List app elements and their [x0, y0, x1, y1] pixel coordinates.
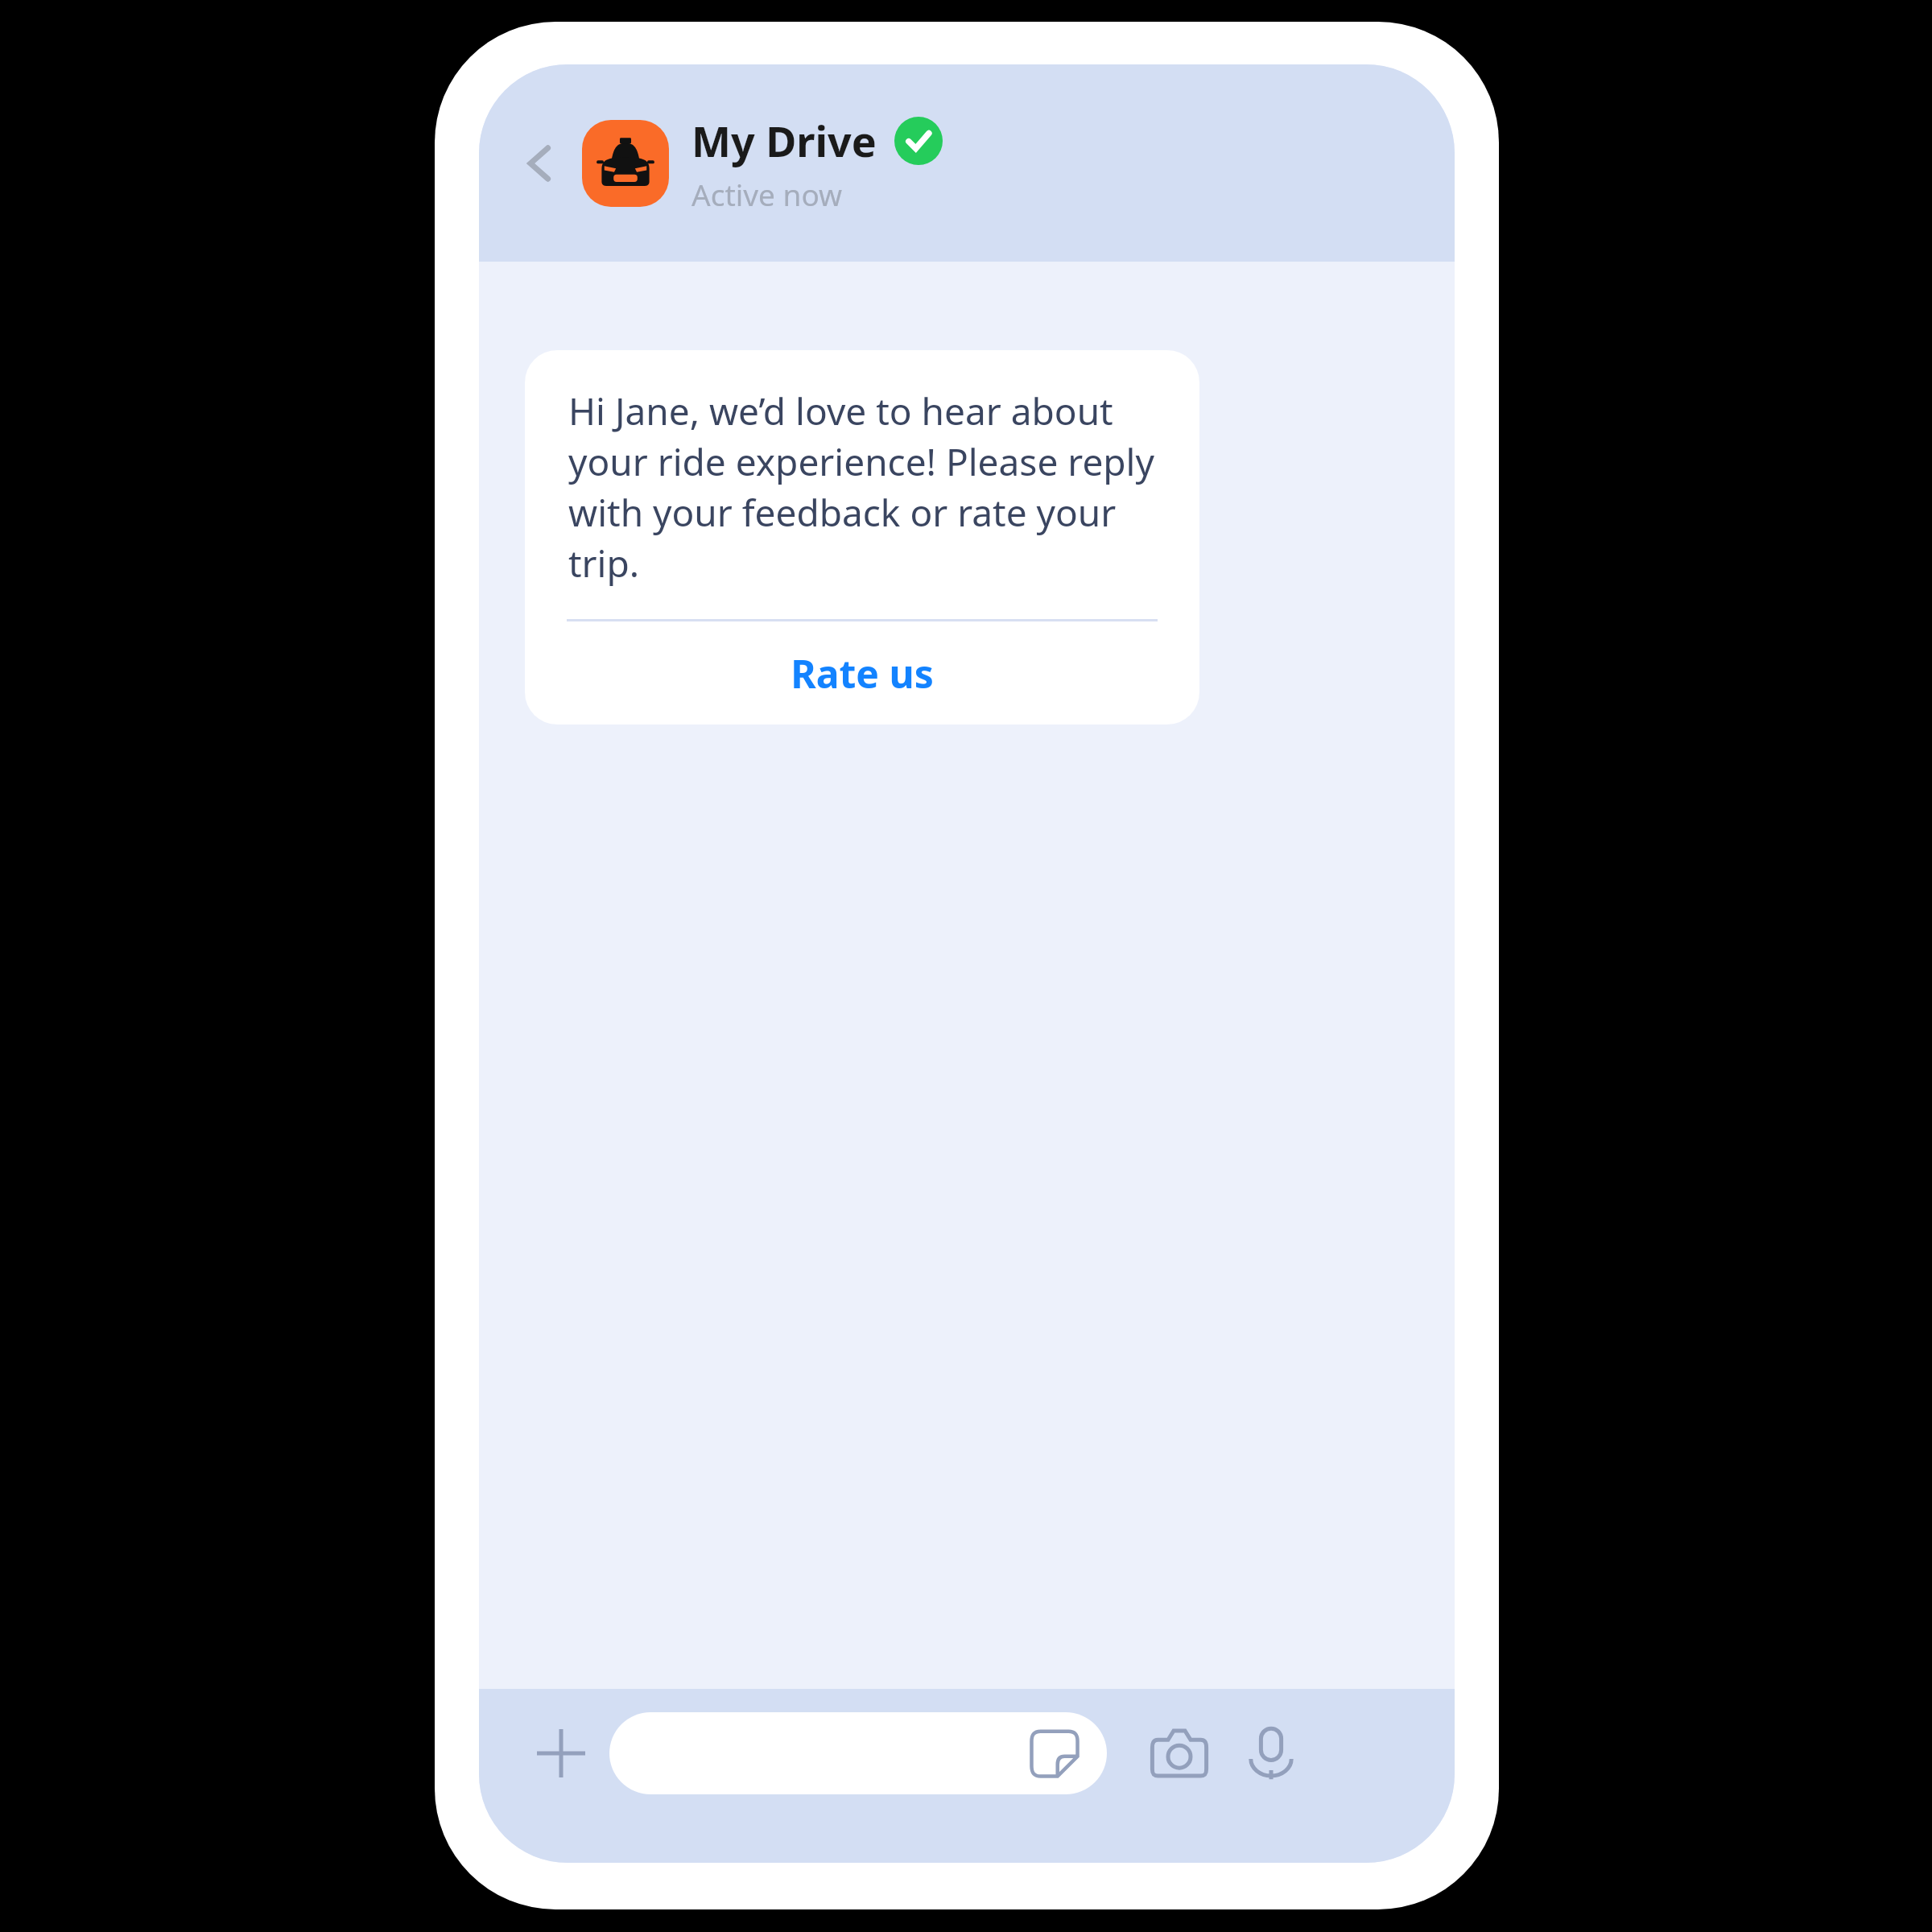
- button[interactable]: Rate us: [525, 621, 1199, 724]
- staticText: My Drive: [691, 112, 877, 169]
- staticText: Hi Jane, we’d love to hear about your ri…: [568, 386, 1159, 588]
- button[interactable]: Voice message: [1231, 1713, 1311, 1794]
- button[interactable]: Camera: [1139, 1713, 1220, 1794]
- button[interactable]: Stickers: [609, 1712, 1107, 1794]
- staticText: Rate us: [791, 647, 934, 700]
- button[interactable]: Hi Jane, we’d love to hear about your ri…: [525, 350, 1199, 724]
- button[interactable]: Add attachment: [524, 1716, 598, 1790]
- button[interactable]: Back: [508, 131, 572, 196]
- button[interactable]: My Drive app icon: [582, 120, 669, 207]
- staticText: Active now: [691, 174, 843, 214]
- other: Stickers: [1030, 1728, 1080, 1778]
